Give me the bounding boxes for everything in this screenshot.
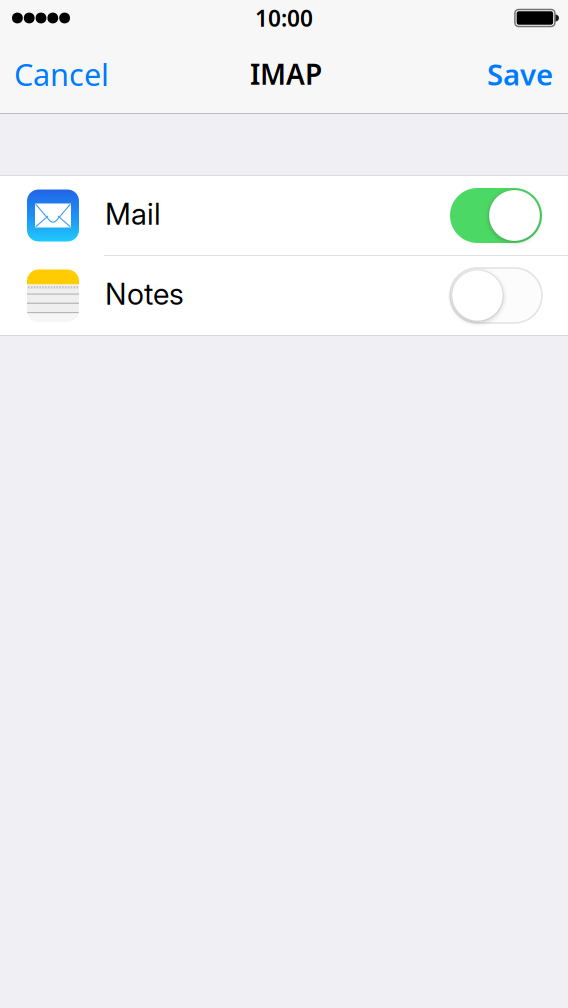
button[interactable]: Cancel (0, 36, 125, 114)
staticText: Cancel (14, 54, 109, 94)
button[interactable]: Mail (0, 176, 568, 255)
button[interactable]: Notes (0, 256, 568, 335)
button[interactable]: Save (473, 36, 568, 114)
button[interactable]: Mail (450, 188, 542, 243)
staticText: 10:00 (255, 3, 313, 33)
button[interactable]: Notes (450, 268, 542, 323)
staticText: Save (487, 54, 553, 93)
staticText: IMAP (250, 55, 322, 93)
staticText: Mail (105, 196, 161, 232)
staticText: Notes (105, 276, 184, 312)
